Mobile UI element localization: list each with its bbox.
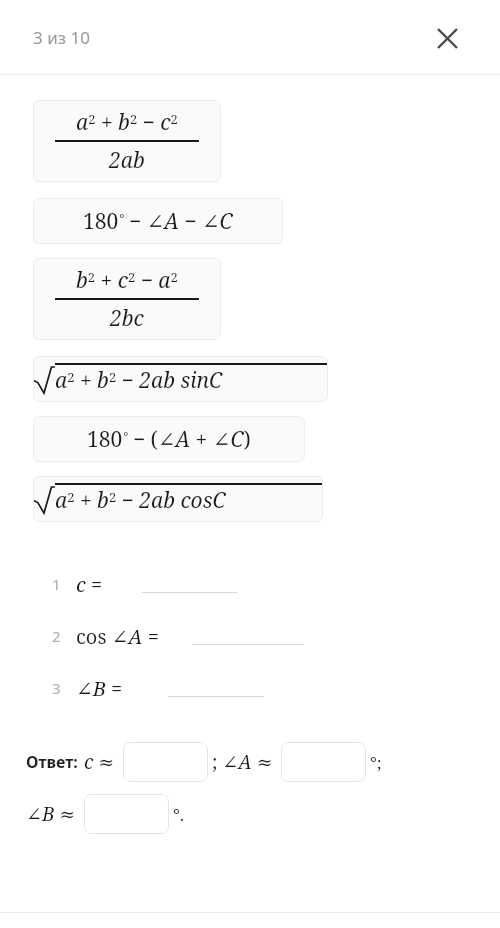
staticText: c = [76, 571, 103, 598]
staticText: 2bc [110, 304, 144, 333]
button[interactable]: 180° − (∠A + ∠C) [33, 416, 305, 462]
button[interactable]: b2 + c2 − a2 [33, 258, 221, 340]
staticText: a2 + b2 − c2 [76, 108, 178, 137]
staticText: 1 [52, 574, 61, 594]
button[interactable] [84, 794, 169, 834]
staticText: 180° − (∠A + ∠C) [87, 425, 251, 454]
button[interactable] [281, 742, 366, 782]
staticText: a2 + b2 − 2ab cosC [55, 486, 226, 515]
button[interactable]: a2 + b2 − c2 [33, 100, 221, 182]
staticText: °. [173, 803, 185, 826]
staticText: 2ab [109, 146, 145, 175]
staticText: 2 [52, 626, 61, 646]
button[interactable]: a2 + b2 − 2ab sinC [33, 356, 328, 402]
staticText: cos ∠A = [76, 623, 159, 650]
staticText: ∠B ≈ [26, 801, 76, 827]
staticText: °; [370, 751, 382, 774]
staticText: 3 [52, 678, 61, 698]
staticText: ; ∠A ≈ [212, 749, 273, 775]
staticText: Ответ: [26, 751, 78, 773]
staticText: a2 + b2 − 2ab sinC [55, 366, 223, 395]
button[interactable]: Закрыть [425, 16, 469, 60]
button[interactable]: a2 + b2 − 2ab cosC [33, 476, 323, 522]
button[interactable] [123, 742, 208, 782]
staticText: 3 из 10 [33, 26, 90, 49]
button[interactable]: 180° − ∠A − ∠C [33, 198, 283, 244]
staticText: ∠B = [76, 675, 123, 702]
staticText: 180° − ∠A − ∠C [83, 207, 233, 236]
staticText: b2 + c2 − a2 [76, 266, 178, 295]
staticText: c ≈ [84, 749, 115, 775]
